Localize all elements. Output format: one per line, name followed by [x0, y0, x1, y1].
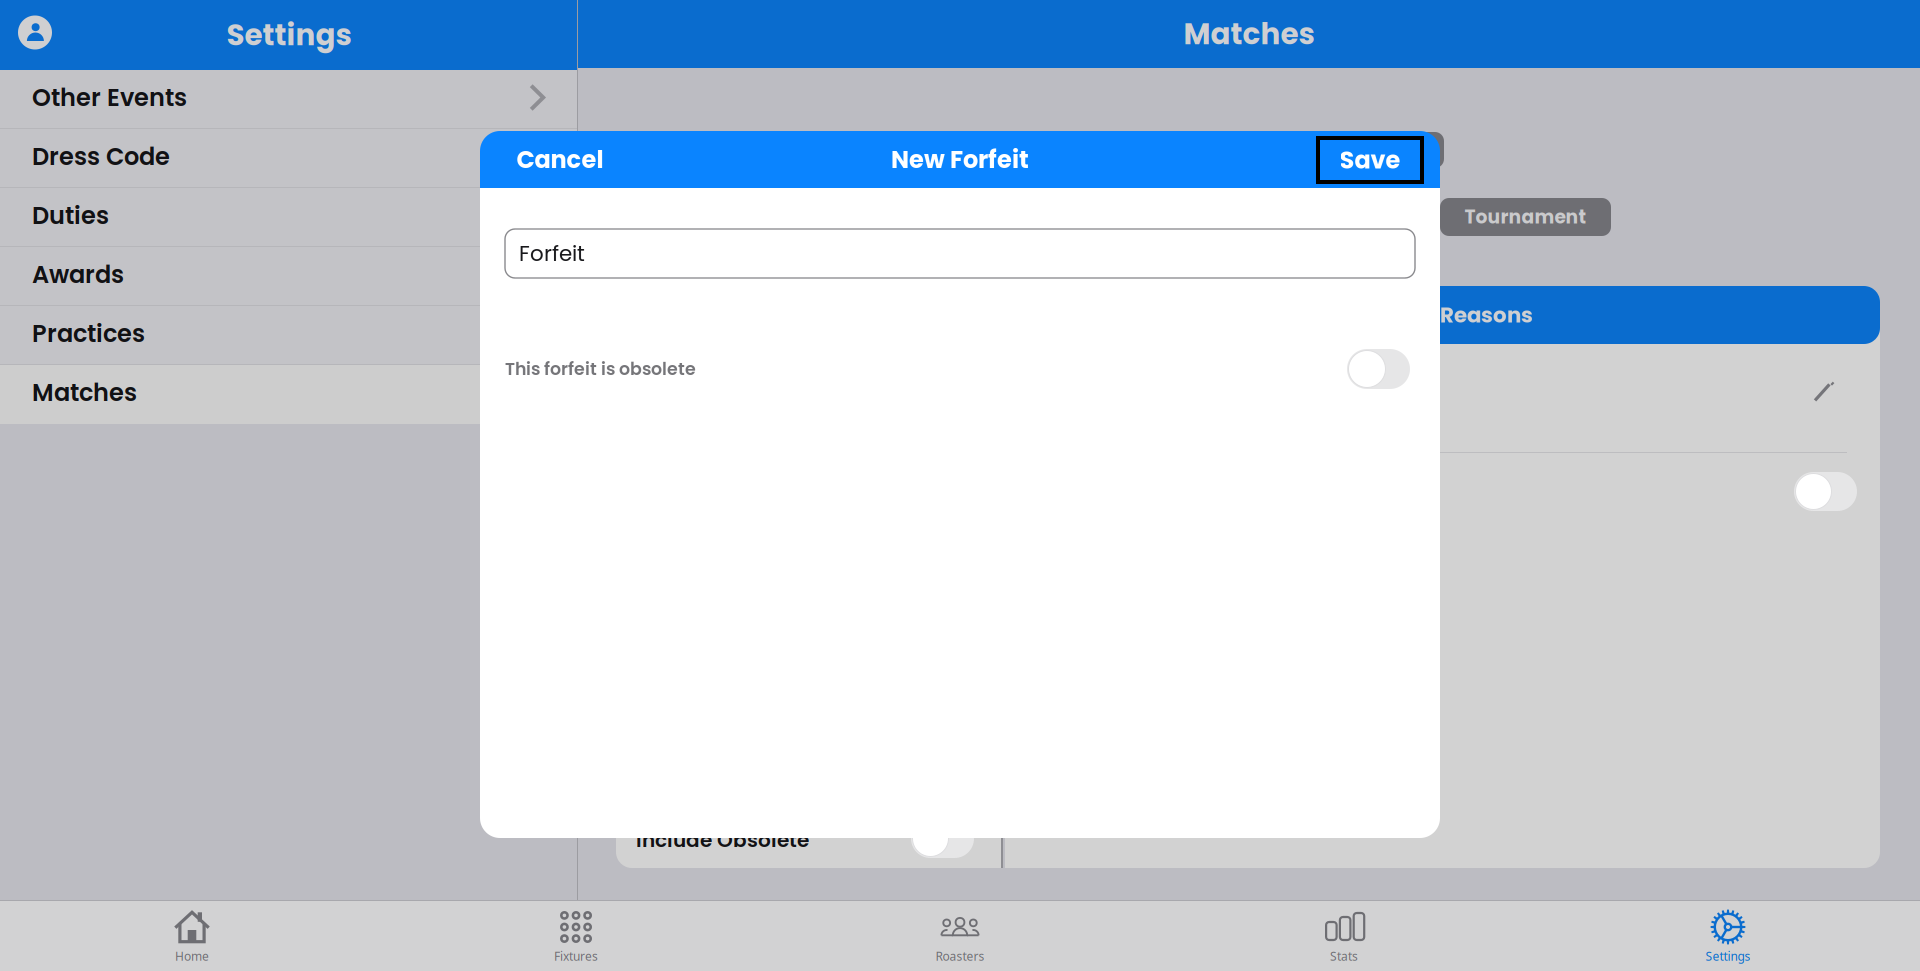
- staticText: Roasters: [935, 948, 984, 964]
- button[interactable]: Toggle: [1347, 349, 1410, 389]
- staticText: New Forfeit: [891, 143, 1029, 176]
- staticText: Matches: [1183, 13, 1314, 55]
- button[interactable]: Cancel: [508, 138, 612, 181]
- button[interactable]: Toggle: [1794, 472, 1857, 511]
- staticText: Home: [175, 948, 209, 964]
- staticText: Forfeit: [519, 239, 585, 268]
- staticText: Duties: [32, 199, 109, 232]
- staticText: Fixtures: [554, 948, 598, 964]
- button[interactable]: Stats: [1152, 901, 1536, 971]
- staticText: Settings: [226, 14, 351, 56]
- button[interactable]: Edit: [1813, 381, 1836, 402]
- button[interactable]: Save: [1318, 138, 1422, 182]
- staticText: Cancel: [516, 143, 603, 176]
- staticText: Save: [1339, 143, 1400, 177]
- button[interactable]: Dress Code: [0, 129, 578, 188]
- staticText: Stats: [1330, 948, 1358, 964]
- button[interactable]: Matches: [0, 365, 578, 424]
- staticText: This forfeit is obsolete: [505, 357, 696, 381]
- button[interactable]: Practices: [0, 306, 578, 365]
- staticText: Awards: [32, 258, 124, 291]
- staticText: Dress Code: [32, 140, 170, 173]
- button[interactable]: Tournament: [1440, 198, 1611, 236]
- button[interactable]: Roasters: [768, 901, 1152, 971]
- staticText: Other Events: [32, 81, 187, 114]
- staticText: Matches: [32, 376, 137, 409]
- button[interactable]: Duties: [0, 188, 578, 247]
- staticText: Tournament: [1464, 204, 1586, 230]
- button[interactable]: Awards: [0, 247, 578, 306]
- button[interactable]: Other Events: [0, 70, 578, 129]
- staticText: Settings: [1705, 948, 1750, 964]
- button[interactable]: Home: [0, 901, 384, 971]
- button[interactable]: Add: [1324, 132, 1444, 168]
- staticText: Practices: [32, 317, 145, 350]
- button[interactable]: Settings: [1536, 901, 1920, 971]
- button[interactable]: Toggle: [911, 819, 974, 858]
- staticText: Include Obsolete: [636, 826, 809, 854]
- button[interactable]: Account: [18, 15, 52, 49]
- staticText: Forfeit Reasons: [1364, 300, 1533, 330]
- button[interactable]: Fixtures: [384, 901, 768, 971]
